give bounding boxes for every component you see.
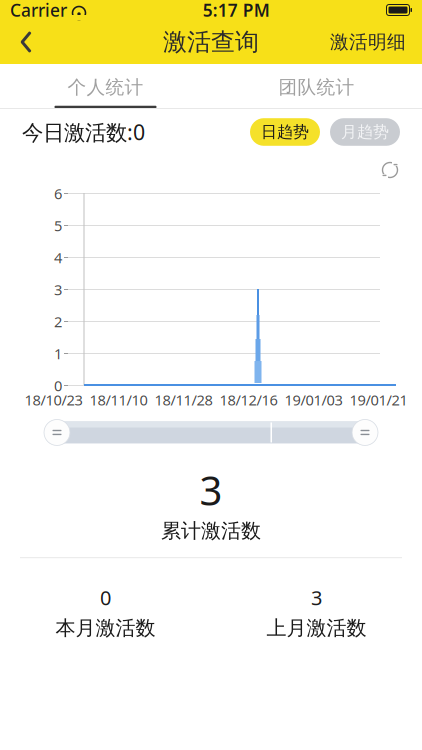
staticText: 18/11/10: [89, 390, 147, 409]
staticText: 上月激活数: [266, 616, 366, 640]
staticText: 5:17 PM: [203, 0, 270, 21]
button[interactable]: 调整范围: [350, 417, 380, 447]
staticText: 激活查询: [163, 27, 259, 57]
staticText: 3: [311, 584, 322, 611]
button[interactable]: 日趋势: [250, 118, 320, 146]
staticText: 团队统计: [278, 76, 354, 99]
button[interactable]: 激活明细: [318, 22, 418, 62]
staticText: 3: [199, 463, 222, 517]
staticText: 6: [54, 184, 62, 203]
staticText: 本月激活数: [55, 616, 155, 640]
button[interactable]: 返回: [4, 22, 48, 62]
staticText: 4: [54, 248, 62, 267]
button[interactable]: 调整范围: [42, 417, 72, 447]
staticText: 个人统计: [67, 76, 143, 99]
staticText: 19/01/21: [349, 390, 407, 409]
staticText: 今日激活数:0: [22, 118, 145, 146]
staticText: 激活明细: [330, 30, 406, 53]
staticText: 18/10/23: [24, 390, 82, 409]
staticText: 19/01/03: [284, 390, 342, 409]
staticText: 日趋势: [261, 122, 309, 142]
staticText: 0: [54, 376, 62, 395]
button[interactable]: 刷新: [380, 156, 422, 184]
staticText: 3: [54, 280, 62, 299]
button[interactable]: 个人统计: [0, 64, 211, 108]
staticText: Carrier: [10, 0, 67, 21]
staticText: 5: [54, 216, 62, 235]
staticText: 18/12/16: [219, 390, 277, 409]
staticText: 2: [54, 312, 62, 331]
staticText: 0: [100, 584, 111, 611]
button[interactable]: 月趋势: [330, 118, 400, 146]
button[interactable]: 团队统计: [211, 64, 422, 108]
staticText: 月趋势: [341, 122, 389, 142]
staticText: 1: [54, 344, 62, 363]
staticText: 18/11/28: [154, 390, 212, 409]
staticText: 累计激活数: [161, 519, 261, 543]
